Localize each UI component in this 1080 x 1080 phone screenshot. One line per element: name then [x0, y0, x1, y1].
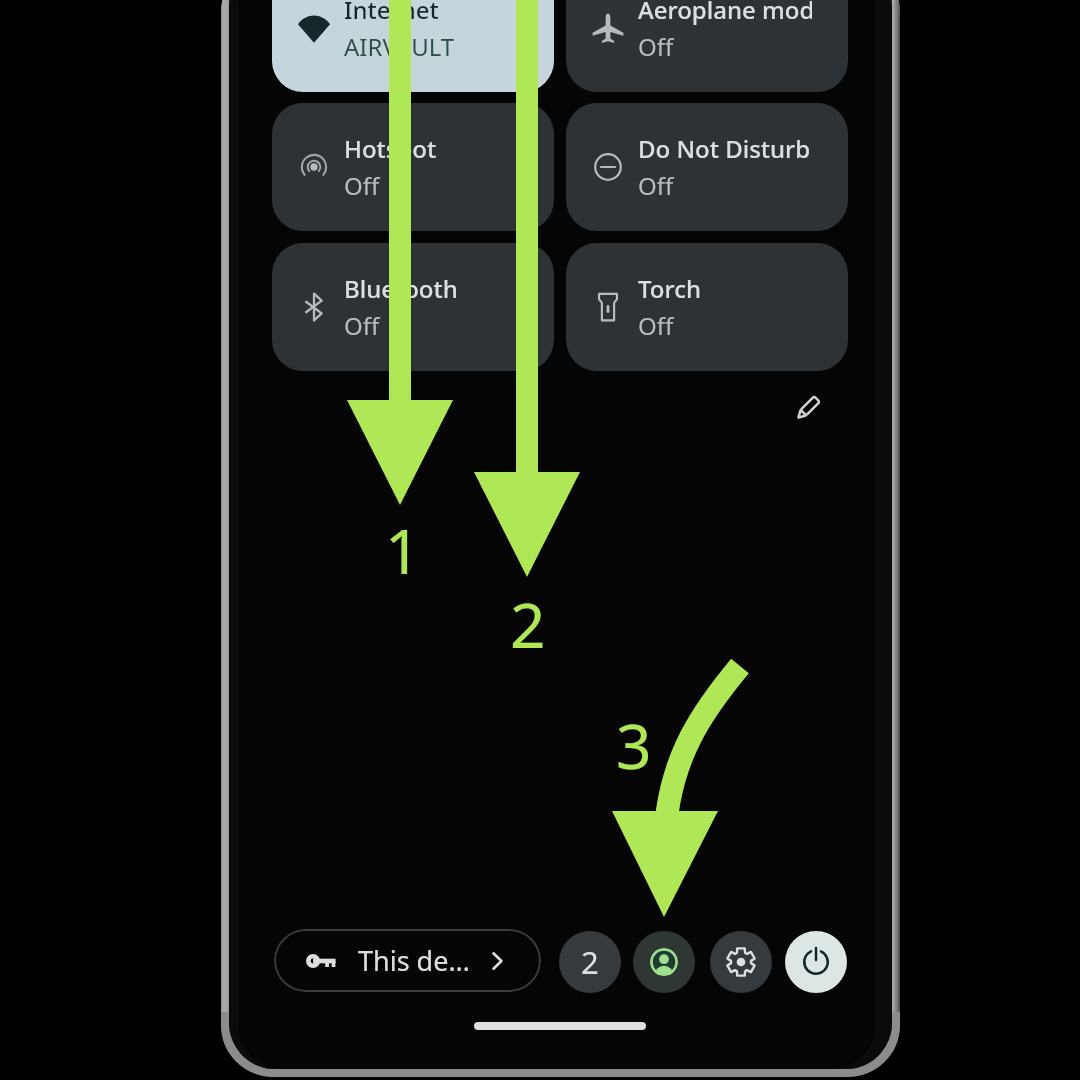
- button[interactable]: Internet: [272, 0, 554, 92]
- staticText: 2: [510, 582, 546, 666]
- staticText: Off: [638, 30, 674, 63]
- staticText: 3: [616, 703, 652, 787]
- button[interactable]: Edit quick settings: [782, 382, 834, 434]
- staticText: 1: [385, 508, 421, 592]
- button[interactable]: Torch: [566, 243, 848, 371]
- button[interactable]: Bluetooth: [272, 243, 554, 371]
- staticText: Off: [344, 169, 380, 202]
- staticText: Aeroplane mode: [638, 0, 812, 26]
- staticText: Off: [638, 309, 674, 342]
- staticText: AIRVAULT: [344, 30, 455, 63]
- staticText: Off: [638, 169, 674, 202]
- button[interactable]: Switch user: [559, 931, 621, 993]
- staticText: Bluetooth: [344, 272, 458, 305]
- button[interactable]: Settings: [710, 931, 772, 993]
- button[interactable]: Do Not Disturb: [566, 103, 848, 231]
- staticText: 2: [581, 941, 599, 983]
- staticText: Off: [344, 309, 380, 342]
- button[interactable]: Account: [633, 931, 695, 993]
- staticText: Internet: [344, 0, 439, 26]
- staticText: Do Not Disturb: [638, 132, 811, 165]
- button[interactable]: Power: [785, 931, 847, 993]
- staticText: This de…: [358, 942, 470, 979]
- button[interactable]: Aeroplane mode: [566, 0, 848, 92]
- button[interactable]: Hotspot: [272, 103, 554, 231]
- button[interactable]: This de…: [274, 929, 541, 992]
- staticText: Torch: [638, 272, 701, 305]
- staticText: Hotspot: [344, 132, 437, 165]
